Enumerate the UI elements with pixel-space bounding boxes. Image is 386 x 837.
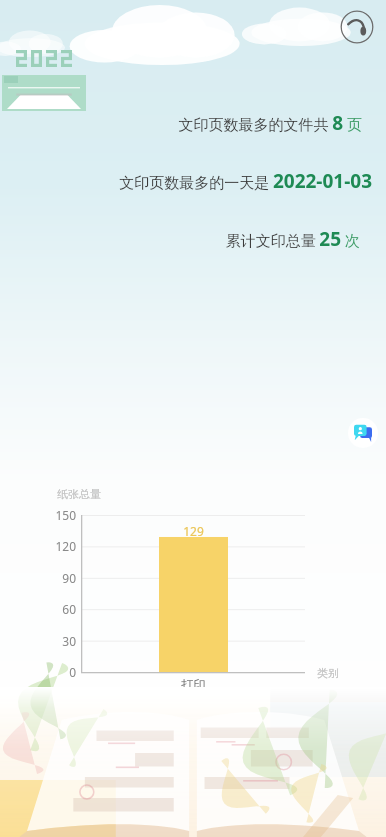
staticText: 文印页数最多的文件共 8 页	[178, 110, 362, 136]
staticText: 90	[40, 570, 76, 586]
button[interactable]: Customer service	[348, 418, 378, 448]
staticText: 纸张总量	[57, 487, 101, 501]
staticText: 打印	[159, 677, 228, 692]
staticText: 0	[40, 664, 76, 680]
button[interactable]: 累计文印总量 25 次	[0, 226, 386, 252]
staticText: 类别	[317, 666, 339, 680]
button[interactable]: Share	[340, 10, 374, 44]
button[interactable]: 文印页数最多的一天是 2022-01-03	[0, 168, 386, 194]
staticText: 129	[159, 523, 228, 539]
staticText: 文印页数最多的一天是 2022-01-03	[119, 168, 372, 194]
staticText: 30	[40, 633, 76, 649]
staticText: 120	[40, 538, 76, 554]
staticText: 150	[40, 507, 76, 523]
staticText: 60	[40, 601, 76, 617]
staticText: 累计文印总量 25 次	[225, 226, 360, 252]
button[interactable]: 文印页数最多的文件共 8 页	[0, 110, 386, 136]
